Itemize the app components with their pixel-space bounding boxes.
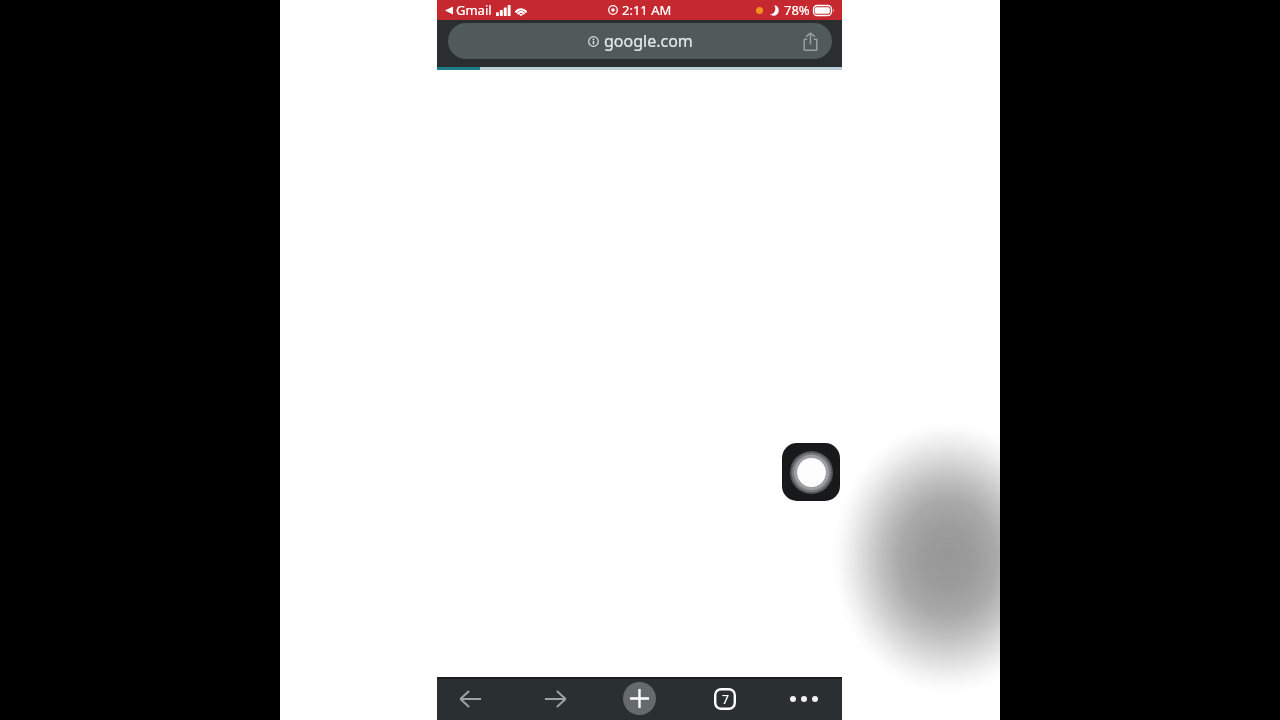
button[interactable]: Share xyxy=(799,30,821,52)
button[interactable]: Tabs xyxy=(705,677,745,720)
staticText: Gmail xyxy=(456,1,492,19)
button[interactable]: Back xyxy=(450,677,490,720)
button[interactable]: google.com xyxy=(448,23,832,59)
button[interactable]: Camera xyxy=(782,443,840,501)
staticText: 7 xyxy=(722,691,729,707)
button[interactable]: More xyxy=(784,677,824,720)
button[interactable]: New tab xyxy=(619,677,659,720)
button[interactable]: Forward xyxy=(535,677,575,720)
staticText: 78% xyxy=(784,1,810,19)
staticText: 2:11 AM xyxy=(622,1,672,19)
staticText: google.com xyxy=(604,30,693,52)
